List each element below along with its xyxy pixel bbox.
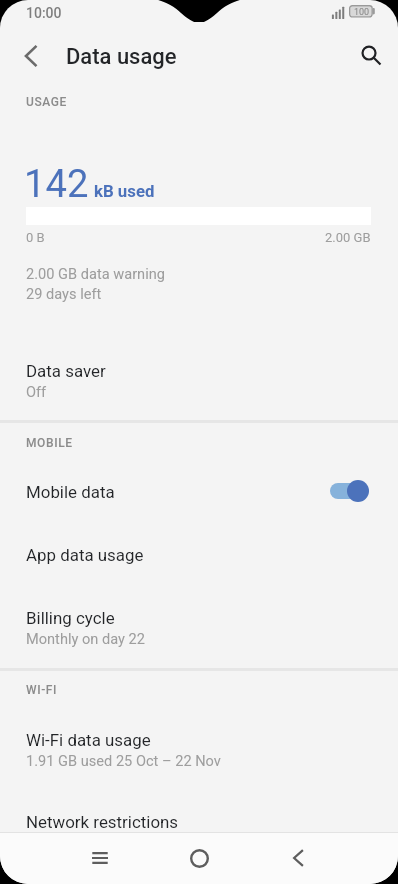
button[interactable]: Back	[268, 838, 328, 878]
staticText: 29 days left	[26, 285, 102, 302]
staticText: Network restrictions	[26, 812, 179, 832]
staticText: 2.00 GB	[325, 230, 371, 245]
staticText: 100	[354, 7, 370, 18]
staticText: Billing cycle	[26, 608, 115, 628]
button[interactable]: Home	[169, 838, 229, 878]
button[interactable]: Navigate up	[8, 33, 54, 79]
staticText: WI-FI	[26, 683, 58, 697]
staticText: Monthly on day 22	[26, 630, 146, 647]
staticText: 142	[24, 162, 89, 207]
button[interactable]: Recent apps	[70, 838, 130, 878]
staticText: kB used	[94, 181, 155, 201]
staticText: 1.91 GB used 25 Oct – 22 Nov	[26, 752, 221, 769]
staticText: Off	[26, 383, 47, 400]
staticText: Data saver	[26, 361, 106, 381]
staticText: 0 B	[26, 230, 45, 245]
staticText: App data usage	[26, 545, 144, 565]
button[interactable]: Data saver	[0, 356, 398, 410]
staticText: USAGE	[26, 95, 67, 109]
button[interactable]: App data usage	[0, 540, 398, 575]
staticText: Wi-Fi data usage	[26, 730, 151, 750]
staticText: 10:00	[26, 5, 62, 21]
button[interactable]: Search	[348, 32, 394, 78]
staticText: Data usage	[66, 44, 177, 70]
button[interactable]: Mobile data	[0, 465, 398, 519]
staticText: Mobile data	[26, 482, 115, 502]
staticText: MOBILE	[26, 436, 73, 450]
staticText: 2.00 GB data warning	[26, 265, 165, 282]
button[interactable]: Billing cycle	[0, 603, 398, 657]
button[interactable]: Network restrictions	[0, 807, 398, 842]
button[interactable]: Wi-Fi data usage	[0, 725, 398, 779]
